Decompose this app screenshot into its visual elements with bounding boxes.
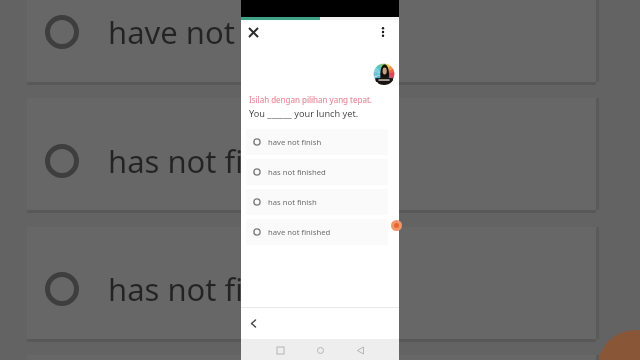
button[interactable]: has not finish (246, 189, 388, 215)
button[interactable]: have not finished (246, 219, 388, 245)
staticText: You ______ your lunch yet. (249, 107, 359, 120)
button[interactable]: Close (243, 22, 263, 42)
staticText: have not finished (268, 227, 331, 237)
button[interactable]: Recents (272, 342, 288, 358)
staticText: have not finish (268, 137, 322, 147)
button[interactable]: has not finished (246, 159, 388, 185)
button[interactable]: Previous (244, 314, 262, 332)
staticText: has not fi (108, 268, 244, 310)
button[interactable]: More options (373, 22, 393, 42)
staticText: have not (108, 11, 235, 53)
staticText: has not finish (268, 197, 317, 207)
button[interactable]: Channel avatar (373, 63, 395, 85)
staticText: Isilah dengan pilihan yang tepat. (249, 94, 372, 105)
staticText: has not finished (268, 167, 326, 177)
button[interactable]: Next (391, 220, 402, 231)
button[interactable]: have not finish (246, 129, 388, 155)
staticText: has not fi (108, 140, 244, 182)
button[interactable]: Home (312, 342, 328, 358)
button[interactable]: Back (352, 342, 368, 358)
